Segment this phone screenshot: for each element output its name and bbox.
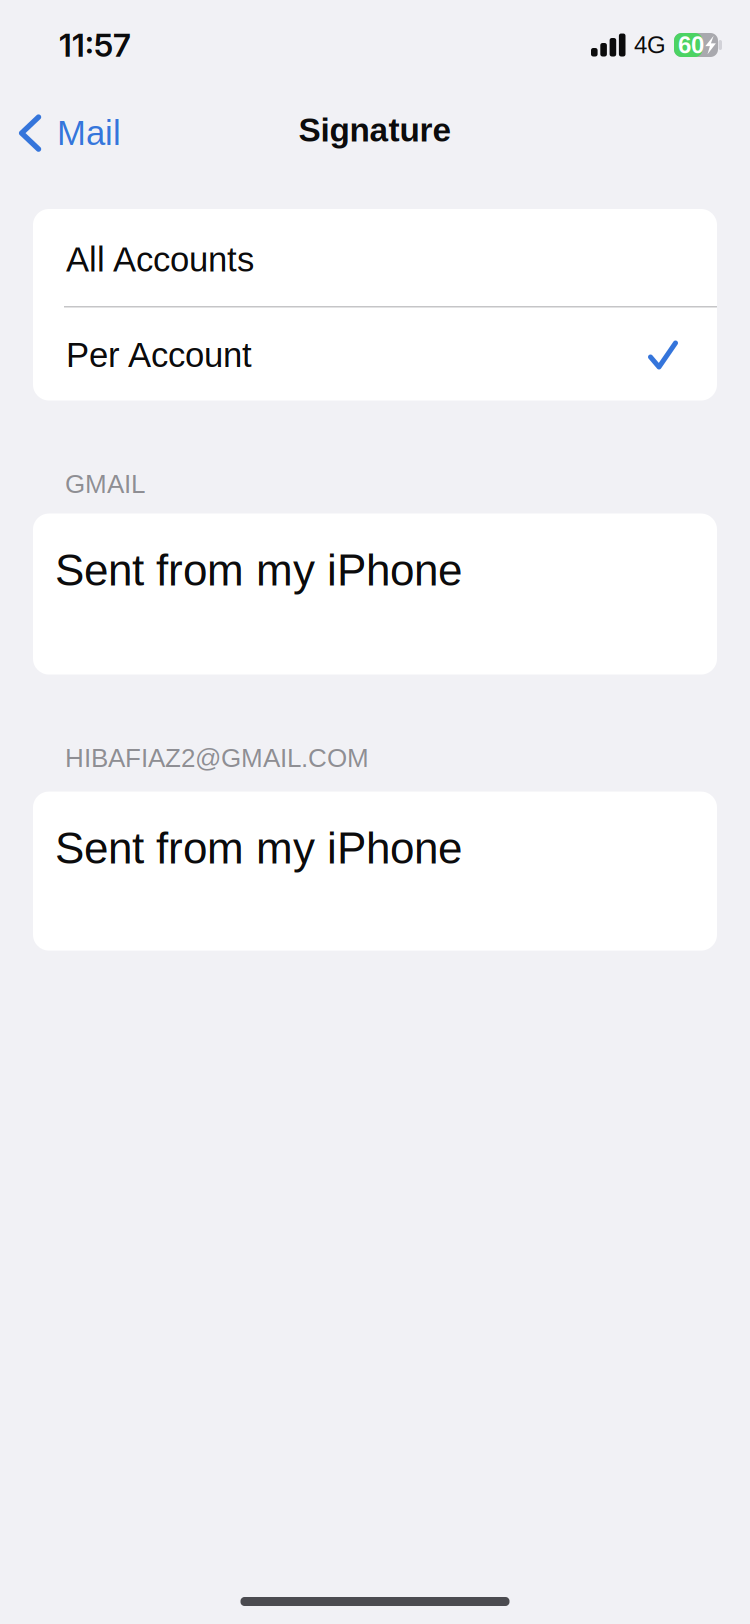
staticText: Sent from my iPhone xyxy=(55,545,462,595)
staticText: All Accounts xyxy=(66,240,254,279)
button[interactable]: Back to Mail xyxy=(0,107,135,159)
button[interactable]: Per Account xyxy=(33,307,717,400)
staticText: GMAIL xyxy=(65,469,145,498)
staticText: 11:57 xyxy=(59,26,131,64)
staticText: 4G xyxy=(634,32,666,58)
staticText: Signature xyxy=(298,111,451,149)
staticText: Sent from my iPhone xyxy=(55,824,462,873)
button[interactable]: All Accounts xyxy=(33,209,717,306)
button[interactable]: Sent from my iPhone xyxy=(33,792,717,951)
staticText: HIBAFIAZ2@GMAIL.COM xyxy=(65,743,369,772)
staticText: Per Account xyxy=(66,336,252,374)
button[interactable]: Sent from my iPhone xyxy=(33,513,717,674)
staticText: Mail xyxy=(57,114,121,152)
staticText: 60 xyxy=(678,32,704,58)
